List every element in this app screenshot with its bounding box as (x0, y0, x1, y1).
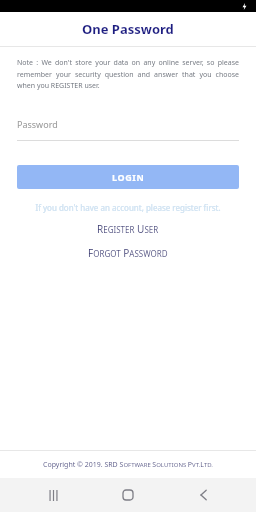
staticText: Copyright © 2019. SRD SOFTWARE SOLUTIONS… (43, 460, 213, 470)
button[interactable]: Back (181, 478, 225, 512)
staticText: REGISTER USER (97, 222, 159, 236)
button[interactable]: Home (106, 478, 150, 512)
button[interactable]: FORGOT PASSWORD (17, 246, 239, 260)
staticText: LOGIN (112, 171, 145, 183)
staticText: One Password (82, 20, 174, 38)
staticText: Note : We don't store your data on any o… (17, 58, 239, 90)
button[interactable]: Password (17, 113, 239, 141)
staticText: Password (17, 118, 58, 130)
button[interactable]: Recent apps (31, 478, 75, 512)
button[interactable]: REGISTER USER (17, 222, 239, 236)
staticText: FORGOT PASSWORD (88, 246, 168, 260)
button[interactable]: LOGIN (17, 165, 239, 189)
staticText: If you don't have an account, please reg… (17, 202, 239, 213)
